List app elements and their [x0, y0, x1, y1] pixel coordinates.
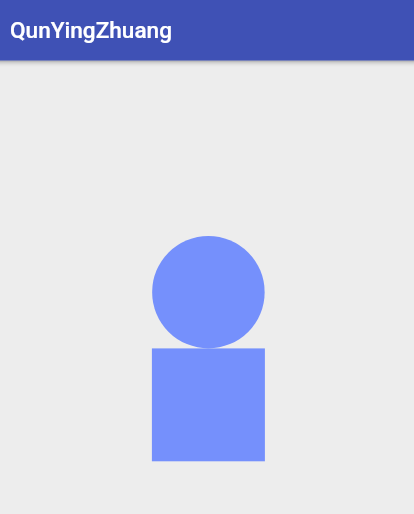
staticText: QunYingZhuang: [10, 17, 172, 43]
button[interactable]: QunYingZhuang: [0, 0, 414, 60]
other: Circle above a square: [0, 0, 414, 514]
